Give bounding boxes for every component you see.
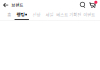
staticText: 랭킹: [16, 11, 24, 18]
staticText: 홈: [7, 11, 11, 18]
button[interactable]: 베스트: [56, 10, 68, 20]
staticText: 기획전: [69, 11, 81, 18]
button[interactable]: 기획전: [68, 10, 82, 20]
button[interactable]: Back: [0, 0, 11, 10]
staticText: 세일: [45, 11, 53, 18]
button[interactable]: 세일: [43, 10, 56, 20]
staticText: 브랜드: [11, 2, 23, 8]
staticText: 이벤트: [83, 11, 95, 18]
button[interactable]: Search: [78, 0, 88, 10]
staticText: 신상: [32, 11, 40, 18]
button[interactable]: 랭킹: [13, 10, 30, 20]
staticText: 베스트: [56, 11, 68, 18]
button[interactable]: Shopping cart: [88, 0, 100, 10]
button[interactable]: 신상: [30, 10, 43, 20]
button[interactable]: 이벤트: [82, 10, 96, 20]
button[interactable]: 홈: [5, 10, 13, 20]
